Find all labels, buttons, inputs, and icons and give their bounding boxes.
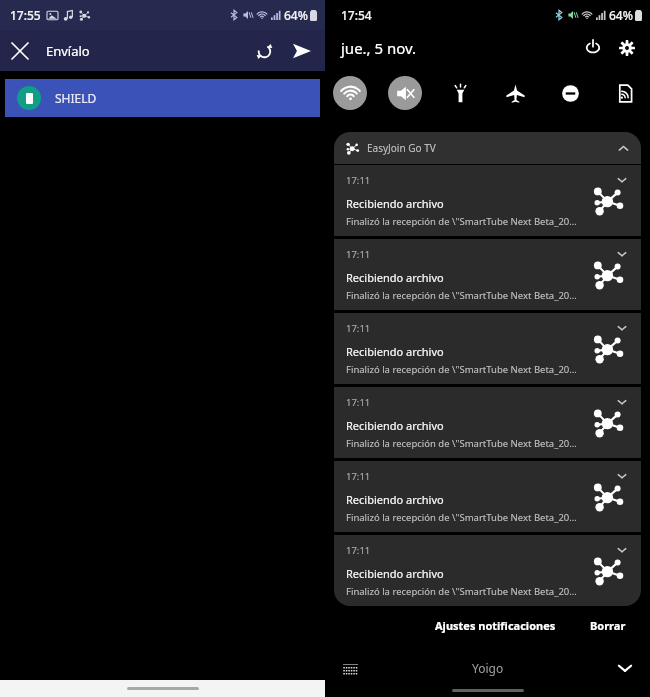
button[interactable]: Expand: [615, 395, 629, 409]
button[interactable]: Expand: [615, 543, 629, 557]
button[interactable]: Keyboard: [335, 653, 365, 683]
button[interactable]: Do not disturb: [553, 76, 587, 110]
staticText: 17:54: [341, 7, 372, 23]
staticText: Recibiendo archivo: [346, 270, 444, 285]
button[interactable]: Expand: [615, 321, 629, 335]
staticText: 17:11: [346, 248, 371, 261]
button[interactable]: Expand: [615, 247, 629, 261]
staticText: Recibiendo archivo: [346, 418, 444, 433]
staticText: 17:11: [346, 396, 371, 409]
button[interactable]: 17:11: [334, 313, 641, 384]
button[interactable]: 17:11: [334, 461, 641, 532]
staticText: Finalizó la recepción de \"SmartTube Nex…: [346, 437, 582, 450]
staticText: EasyJoin Go TV: [367, 141, 436, 155]
staticText: Finalizó la recepción de \"SmartTube Nex…: [346, 585, 582, 598]
button[interactable]: Refresh: [245, 32, 283, 70]
staticText: jue., 5 nov.: [341, 38, 417, 58]
button[interactable]: EasyJoin Go TV: [334, 132, 641, 164]
staticText: 17:11: [346, 322, 371, 335]
button[interactable]: Ajustes notificaciones: [429, 612, 562, 639]
staticText: Finalizó la recepción de \"SmartTube Nex…: [346, 511, 582, 524]
staticText: Recibiendo archivo: [346, 344, 444, 359]
staticText: Recibiendo archivo: [346, 196, 444, 211]
button[interactable]: Send: [283, 32, 321, 70]
staticText: Ajustes notificaciones: [435, 618, 556, 633]
button[interactable]: 17:11: [334, 239, 641, 310]
button[interactable]: 17:11: [334, 535, 641, 606]
button[interactable]: Airplane mode: [498, 76, 532, 110]
button[interactable]: Flashlight: [443, 76, 477, 110]
button[interactable]: Expand: [615, 173, 629, 187]
staticText: Finalizó la recepción de \"SmartTube Nex…: [346, 363, 582, 376]
button[interactable]: Collapse: [610, 653, 640, 683]
button[interactable]: Borrar: [584, 612, 632, 639]
staticText: Yoigo: [472, 660, 504, 676]
staticText: 64%: [284, 7, 308, 23]
staticText: SHIELD: [55, 90, 97, 106]
staticText: Recibiendo archivo: [346, 492, 444, 507]
staticText: 17:11: [346, 544, 371, 557]
button[interactable]: Power: [576, 31, 610, 65]
button[interactable]: Screen record: [608, 76, 642, 110]
staticText: Recibiendo archivo: [346, 566, 444, 581]
staticText: 17:11: [346, 470, 371, 483]
staticText: Finalizó la recepción de \"SmartTube Nex…: [346, 289, 582, 302]
staticText: 17:55: [10, 7, 41, 23]
button[interactable]: Wi-Fi: [333, 76, 367, 110]
button[interactable]: Sound off: [388, 76, 422, 110]
staticText: 17:11: [346, 174, 371, 187]
button[interactable]: 17:11: [334, 387, 641, 458]
button[interactable]: Expand: [615, 469, 629, 483]
staticText: Finalizó la recepción de \"SmartTube Nex…: [346, 215, 582, 228]
button[interactable]: 17:11: [334, 165, 641, 236]
staticText: Borrar: [590, 618, 626, 633]
button[interactable]: Settings: [610, 31, 644, 65]
button[interactable]: Close: [0, 31, 40, 71]
button[interactable]: SHIELD: [5, 79, 320, 117]
staticText: Envíalo: [46, 42, 90, 60]
staticText: 64%: [609, 7, 633, 23]
